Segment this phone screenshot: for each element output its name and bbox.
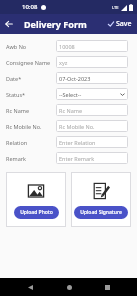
button[interactable]: Consignee Name <box>0 54 137 70</box>
staticText: Rc Name <box>6 107 56 114</box>
staticText: Upload Photo <box>20 209 53 216</box>
button[interactable]: Status* <box>0 86 137 102</box>
staticText: Enter Relation <box>59 139 96 146</box>
staticText: Consignee Name <box>6 59 56 66</box>
staticText: 07-Oct-2023 <box>59 75 91 82</box>
button[interactable]: Back <box>0 15 18 33</box>
staticText: Date* <box>6 75 56 82</box>
staticText: 10008 <box>59 43 75 50</box>
staticText: Save <box>116 19 132 29</box>
button[interactable]: Date* <box>0 70 137 86</box>
button[interactable]: Recents <box>99 279 115 295</box>
staticText: Rc Mobile No. <box>6 123 56 130</box>
button[interactable]: Awb No <box>0 38 137 54</box>
button[interactable]: Home <box>61 279 77 295</box>
staticText: Rc Mobile No. <box>59 123 95 130</box>
staticText: Delivery Form <box>24 18 87 30</box>
button[interactable]: Save <box>103 14 137 34</box>
button[interactable]: Back <box>22 279 38 295</box>
staticText: Upload Signature <box>80 209 122 216</box>
staticText: 10:08 <box>22 3 38 11</box>
button[interactable]: Relation <box>0 134 137 150</box>
staticText: Enter Remark <box>59 155 95 162</box>
button[interactable]: Rc Mobile No. <box>0 118 137 134</box>
staticText: --Select-- <box>59 91 82 98</box>
button[interactable]: Upload Signature <box>74 206 128 219</box>
button[interactable]: Rc Name <box>0 102 137 118</box>
staticText: Remark <box>6 155 56 162</box>
staticText: Relation <box>6 139 56 146</box>
button[interactable]: Remark <box>0 150 137 166</box>
button[interactable]: Upload Photo <box>14 206 59 219</box>
staticText: LTE <box>112 5 119 10</box>
staticText: Awb No <box>6 43 56 50</box>
staticText: Status* <box>6 91 56 98</box>
staticText: xyz <box>59 59 68 66</box>
staticText: Rc Name <box>59 107 83 114</box>
